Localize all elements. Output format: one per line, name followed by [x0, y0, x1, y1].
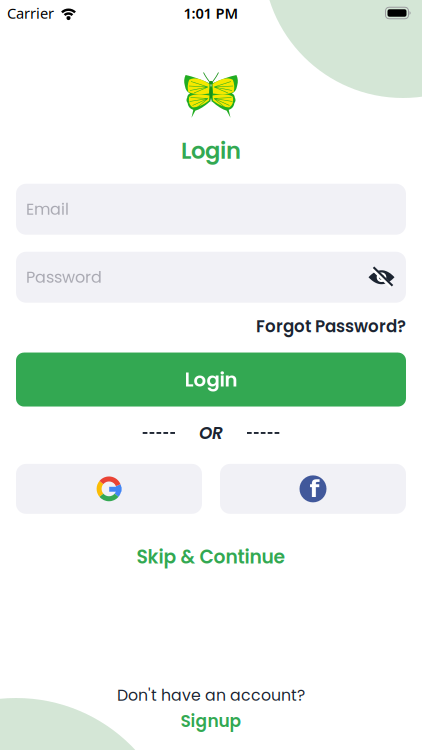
staticText: Don't have an account? — [117, 684, 305, 706]
staticText: f — [309, 476, 319, 503]
staticText: Carrier — [7, 3, 54, 23]
button[interactable]: Skip & Continue — [136, 544, 285, 570]
staticText: Login — [181, 135, 241, 167]
button[interactable]: Show password — [368, 269, 406, 286]
staticText: Password — [26, 266, 102, 288]
staticText: Login — [184, 366, 237, 393]
button[interactable]: Signup — [180, 709, 241, 733]
button[interactable]: Login — [16, 353, 406, 407]
button[interactable]: Forgot Password? — [256, 315, 406, 338]
button[interactable]: Continue with Facebook — [220, 464, 406, 514]
staticText: Signup — [180, 709, 241, 733]
staticText: Email — [26, 198, 69, 220]
staticText: OR — [199, 421, 223, 445]
staticText: 1:01 PM — [183, 3, 238, 23]
staticText: Skip & Continue — [136, 544, 285, 570]
button[interactable]: Continue with Google — [16, 464, 202, 514]
staticText: Forgot Password? — [256, 315, 406, 338]
